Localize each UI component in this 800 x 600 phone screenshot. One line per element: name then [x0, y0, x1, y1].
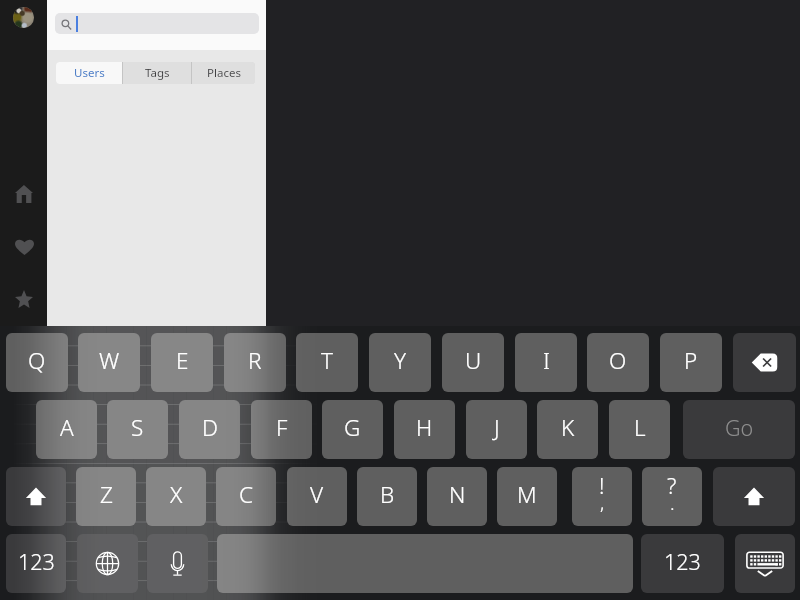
button[interactable]: L [609, 400, 670, 459]
button[interactable]: ? [642, 467, 702, 526]
staticText: Go [725, 413, 754, 442]
button[interactable]: G [322, 400, 383, 459]
button[interactable]: U [442, 333, 504, 392]
button[interactable]: W [78, 333, 140, 392]
staticText: O [609, 345, 627, 376]
button[interactable]: J [466, 400, 527, 459]
staticText: A [60, 412, 74, 443]
button[interactable]: T [296, 333, 358, 392]
button[interactable]: Shift [6, 467, 66, 526]
button[interactable]: Users [56, 62, 122, 84]
button[interactable]: D [179, 400, 240, 459]
button[interactable]: Go [683, 400, 795, 459]
staticText: R [248, 345, 262, 376]
button[interactable]: Space [217, 534, 633, 593]
staticText: Q [28, 345, 46, 376]
staticText: E [176, 345, 189, 376]
staticText: . [670, 490, 675, 516]
staticText: Y [394, 345, 407, 376]
button[interactable]: X [146, 467, 206, 526]
button[interactable]: Change language [77, 534, 138, 593]
button[interactable]: E [151, 333, 213, 392]
staticText: , [600, 490, 605, 516]
button[interactable]: N [427, 467, 487, 526]
staticText: C [239, 479, 254, 510]
staticText: P [684, 345, 698, 376]
staticText: J [494, 412, 500, 443]
button[interactable]: Dictation [147, 534, 208, 593]
button[interactable]: A [36, 400, 97, 459]
staticText: X [170, 479, 183, 510]
button[interactable]: Q [6, 333, 68, 392]
staticText: S [131, 412, 144, 443]
staticText: D [202, 412, 218, 443]
button[interactable]: ! [572, 467, 632, 526]
staticText: K [561, 412, 575, 443]
staticText: Users [74, 65, 105, 81]
button[interactable]: B [357, 467, 417, 526]
button[interactable]: Places [192, 62, 255, 84]
staticText: 123 [664, 547, 701, 576]
button[interactable]: Profile [13, 7, 34, 28]
button[interactable]: F [251, 400, 312, 459]
button[interactable]: O [587, 333, 649, 392]
button[interactable]: Favorites [6, 281, 42, 317]
button[interactable]: Likes [6, 229, 42, 265]
button[interactable]: V [287, 467, 347, 526]
staticText: ! [599, 470, 605, 500]
staticText: Z [100, 479, 113, 510]
button[interactable]: Tags [123, 62, 191, 84]
staticText: T [321, 345, 333, 376]
staticText: L [634, 412, 646, 443]
button[interactable]: Home [6, 176, 42, 212]
staticText: Places [207, 65, 241, 81]
staticText: G [344, 412, 361, 443]
button[interactable]: S [107, 400, 168, 459]
staticText: U [465, 345, 482, 376]
staticText: I [543, 345, 550, 376]
button[interactable]: Hide keyboard [735, 534, 795, 593]
staticText: W [99, 345, 120, 376]
staticText: H [416, 412, 433, 443]
button[interactable]: M [497, 467, 557, 526]
button[interactable]: 123 [641, 534, 724, 593]
button[interactable]: I [515, 333, 577, 392]
button[interactable]: P [660, 333, 722, 392]
button[interactable]: Search [55, 13, 259, 34]
button[interactable]: Shift [713, 467, 795, 526]
button[interactable]: 123 [6, 534, 66, 593]
button[interactable]: R [224, 333, 286, 392]
button[interactable]: Backspace [733, 333, 796, 392]
staticText: M [517, 479, 537, 510]
button[interactable]: K [537, 400, 598, 459]
staticText: V [310, 479, 324, 510]
button[interactable]: Y [369, 333, 431, 392]
staticText: Tags [145, 65, 170, 81]
staticText: ? [667, 470, 677, 500]
button[interactable]: Z [76, 467, 136, 526]
button[interactable]: H [394, 400, 455, 459]
staticText: F [276, 412, 288, 443]
button[interactable]: C [216, 467, 276, 526]
staticText: N [449, 479, 466, 510]
staticText: B [380, 479, 395, 510]
staticText: 123 [18, 547, 55, 576]
